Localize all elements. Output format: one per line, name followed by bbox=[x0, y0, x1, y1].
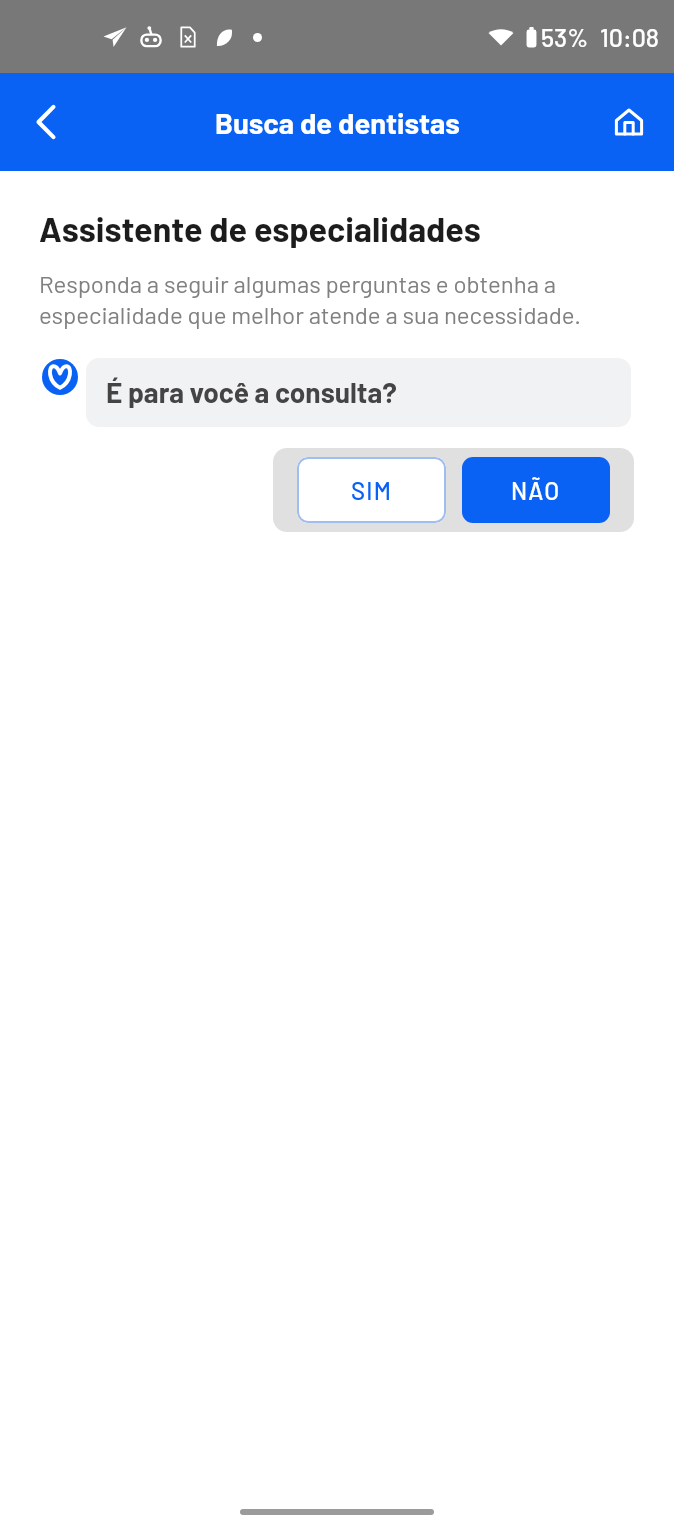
button[interactable]: SIM bbox=[297, 457, 446, 523]
button[interactable]: NÃO bbox=[462, 457, 610, 523]
staticText: 10:08 bbox=[600, 22, 659, 52]
staticText: É para você a consulta? bbox=[106, 375, 397, 409]
button[interactable]: Voltar bbox=[17, 93, 75, 151]
button[interactable]: Início bbox=[600, 93, 658, 151]
staticText: Assistente de especialidades bbox=[39, 208, 481, 249]
staticText: 53% bbox=[541, 22, 589, 52]
staticText: Busca de dentistas bbox=[215, 105, 460, 140]
staticText: Responda a seguir algumas perguntas e ob… bbox=[39, 269, 581, 329]
staticText: SIM bbox=[351, 476, 393, 505]
staticText: NÃO bbox=[511, 476, 561, 505]
